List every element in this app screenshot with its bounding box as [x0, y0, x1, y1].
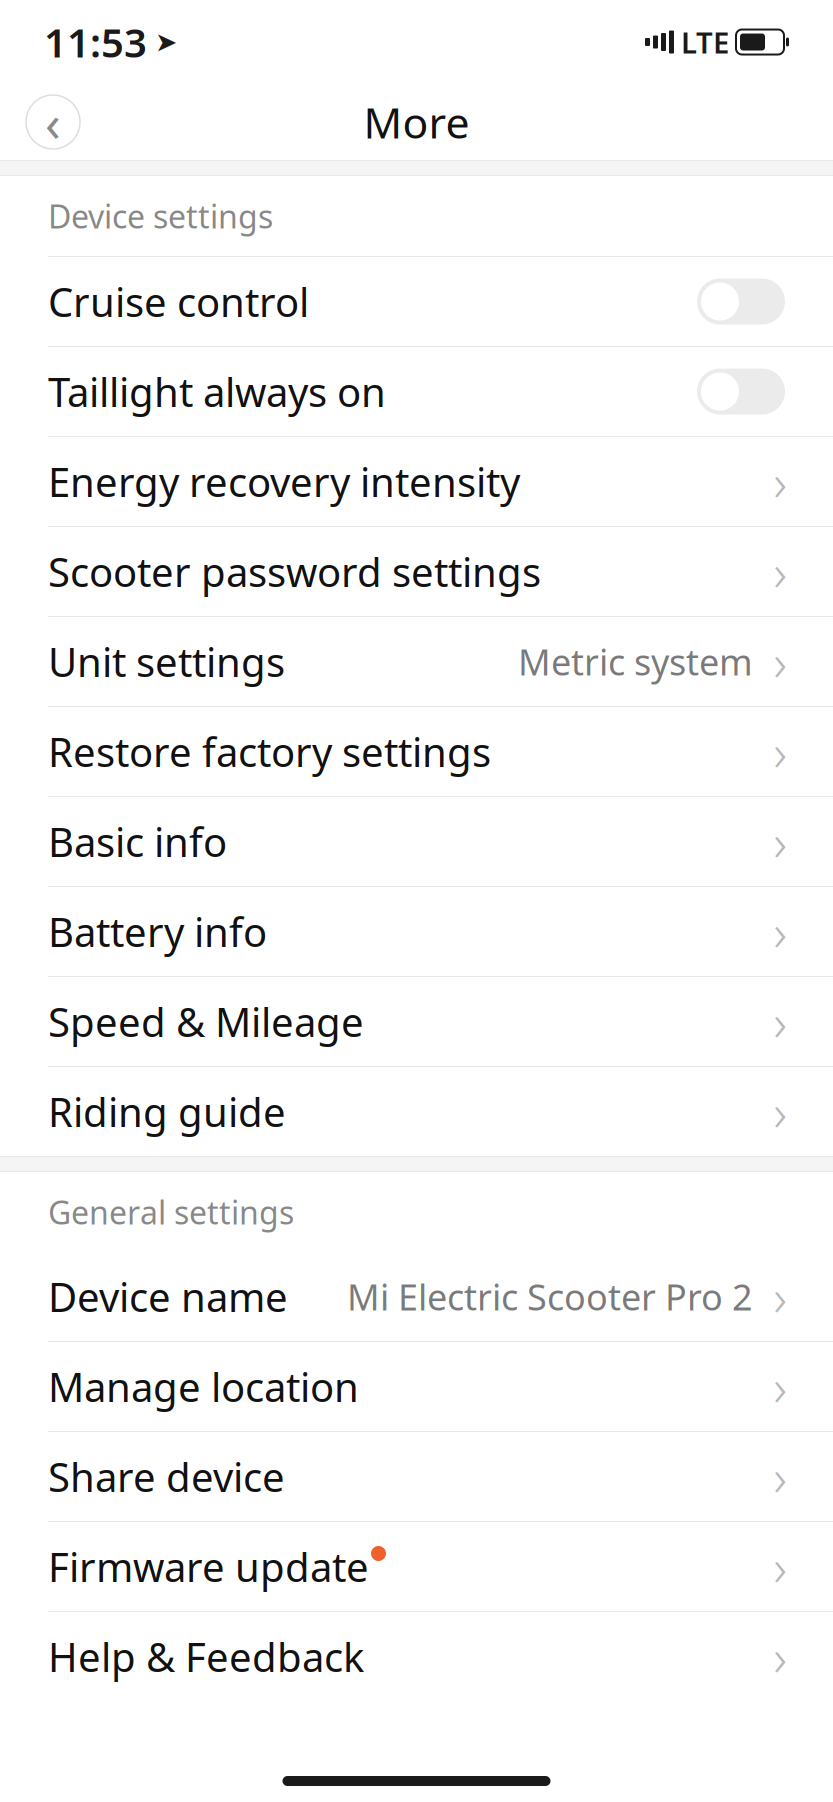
staticText: Unit settings [48, 635, 285, 688]
button[interactable]: Taillight always on [0, 347, 833, 436]
staticText: Speed & Mileage [48, 995, 364, 1048]
staticText: › [773, 988, 786, 1055]
staticText: › [773, 1533, 786, 1600]
button[interactable]: Battery info [0, 887, 833, 976]
staticText: Riding guide [48, 1085, 286, 1138]
staticText: › [773, 1623, 786, 1690]
staticText: Energy recovery intensity [48, 455, 520, 508]
staticText: General settings [48, 1191, 294, 1233]
staticText: 11:53 [44, 15, 147, 68]
staticText: › [773, 538, 786, 605]
staticText: Manage location [48, 1360, 359, 1413]
button[interactable]: Manage location [0, 1342, 833, 1431]
staticText: › [773, 628, 786, 695]
staticText: Scooter password settings [48, 545, 541, 598]
button[interactable]: Device name [0, 1252, 833, 1341]
button[interactable]: Unit settings [0, 617, 833, 706]
staticText: › [773, 1263, 786, 1330]
staticText: Mi Electric Scooter Pro 2 [347, 1273, 753, 1320]
staticText: Help & Feedback [48, 1630, 364, 1683]
staticText: Device name [48, 1270, 288, 1323]
staticText: Restore factory settings [48, 725, 491, 778]
staticText: LTE [681, 22, 729, 61]
staticText: › [773, 898, 786, 965]
staticText: More [363, 94, 469, 150]
button[interactable]: Back [24, 93, 82, 151]
button[interactable]: Scooter password settings [0, 527, 833, 616]
button[interactable]: Share device [0, 1432, 833, 1521]
staticText: ➤ [155, 27, 177, 57]
staticText: › [773, 808, 786, 875]
staticText: › [773, 448, 786, 515]
button[interactable]: Firmware update [0, 1522, 833, 1611]
staticText: › [773, 718, 786, 785]
staticText: Firmware update [48, 1540, 369, 1593]
staticText: Basic info [48, 815, 227, 868]
button[interactable]: Cruise control [0, 257, 833, 346]
staticText: Share device [48, 1450, 285, 1503]
staticText: › [773, 1078, 786, 1145]
staticText: Cruise control [48, 275, 309, 328]
staticText: Device settings [48, 195, 273, 237]
staticText: › [773, 1443, 786, 1510]
button[interactable]: Restore factory settings [0, 707, 833, 796]
button[interactable]: Help & Feedback [0, 1612, 833, 1701]
staticText: ‹ [45, 88, 61, 156]
button[interactable]: Basic info [0, 797, 833, 886]
staticText: Battery info [48, 905, 267, 958]
button[interactable]: Riding guide [0, 1067, 833, 1156]
button[interactable]: Speed & Mileage [0, 977, 833, 1066]
staticText: › [773, 1353, 786, 1420]
staticText: Metric system [518, 638, 753, 685]
button[interactable]: Energy recovery intensity [0, 437, 833, 526]
staticText: Taillight always on [48, 365, 386, 418]
